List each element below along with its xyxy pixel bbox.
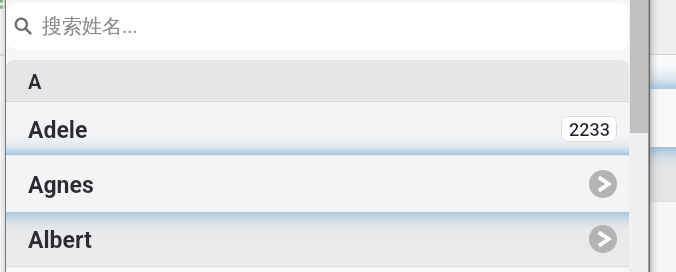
staticText: Adele — [28, 117, 88, 144]
button[interactable]: Albert — [6, 212, 629, 266]
staticText: 2233 — [569, 119, 610, 140]
button[interactable]: Agnes — [6, 156, 629, 212]
staticText: Albert — [28, 227, 92, 254]
button[interactable]: A — [6, 60, 629, 101]
staticText: 搜索姓名... — [42, 14, 138, 39]
staticText: A — [28, 70, 42, 93]
button[interactable]: Open Agnes — [589, 170, 617, 198]
button[interactable]: 搜索姓名... — [7, 3, 629, 50]
button[interactable]: Open Albert — [589, 225, 617, 253]
staticText: Agnes — [28, 172, 94, 199]
button[interactable]: Adele — [6, 102, 629, 156]
